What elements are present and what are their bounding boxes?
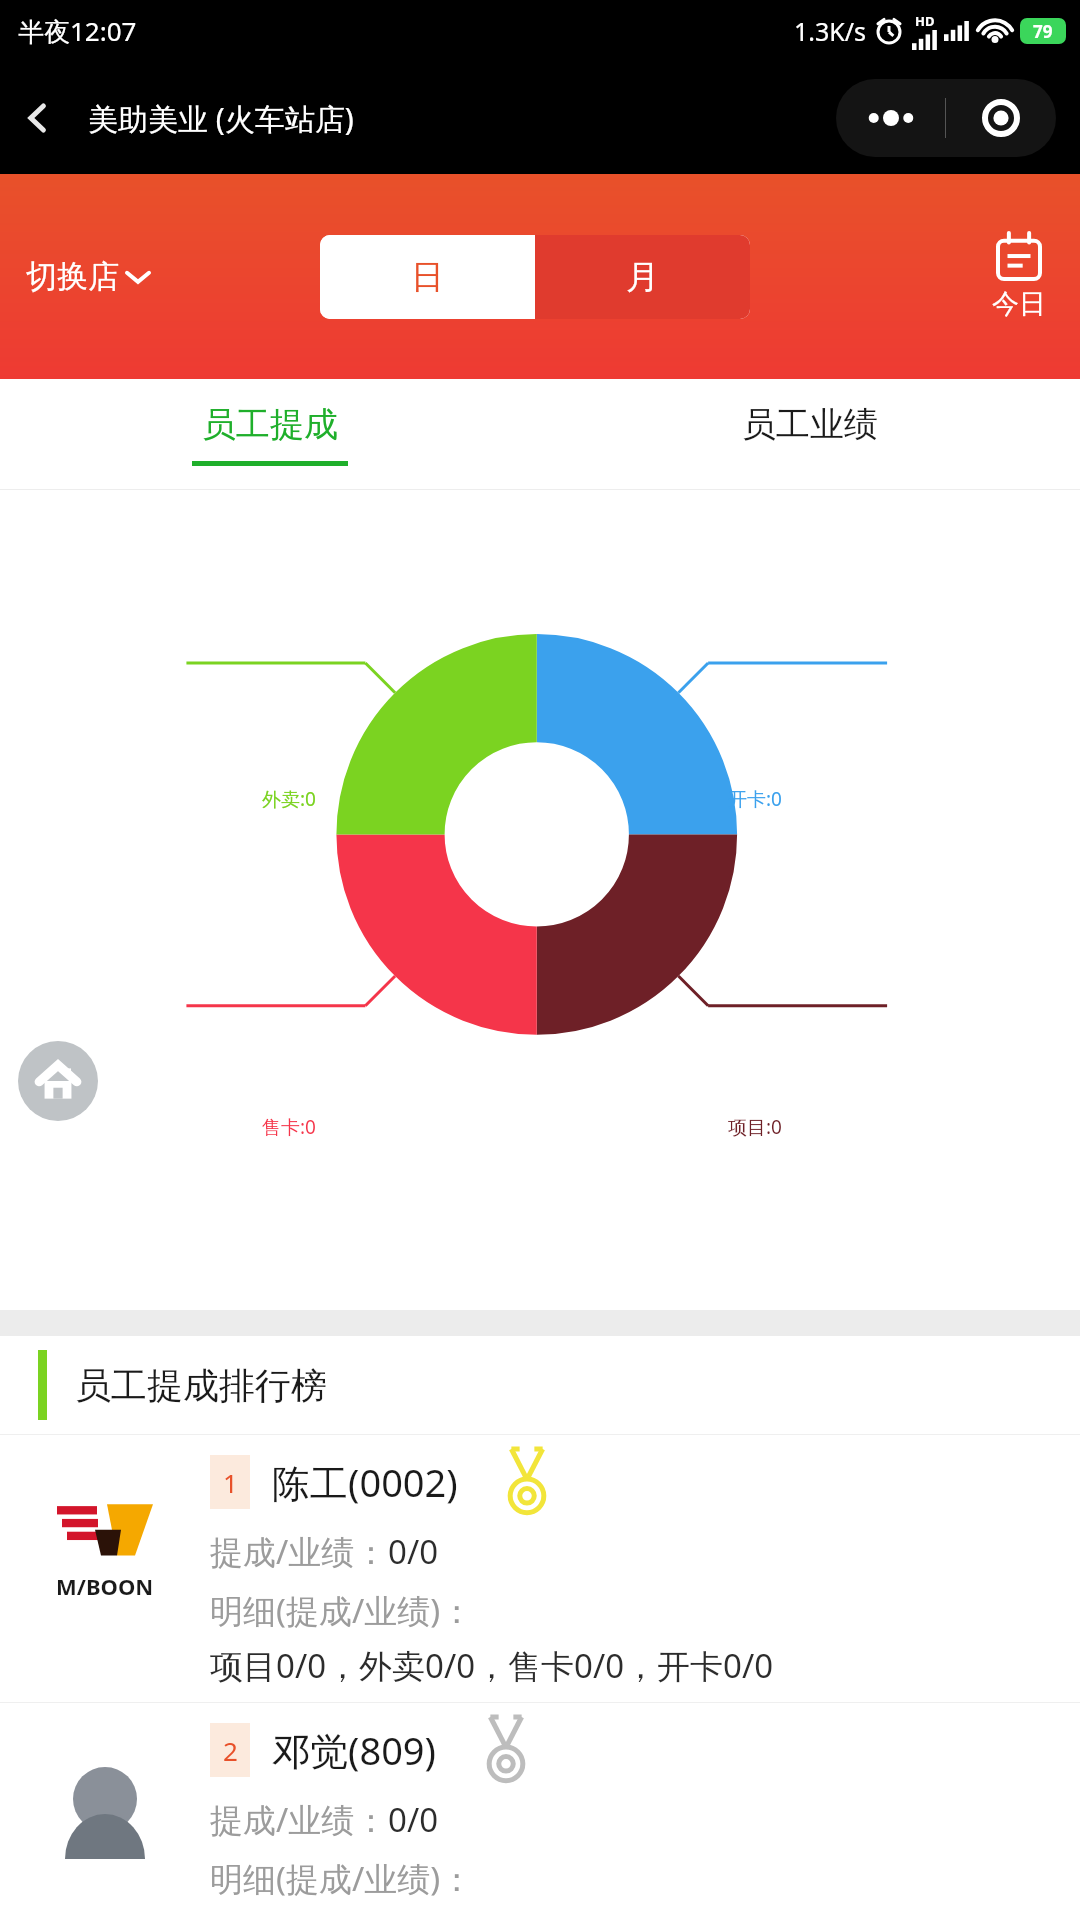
button[interactable]: Back (0, 80, 76, 156)
staticText: 今日 (992, 287, 1046, 321)
staticText: 美助美业 (火车站店) (88, 98, 354, 139)
staticText: 日 (411, 256, 444, 298)
staticText: 提成/业绩： (210, 1797, 388, 1842)
staticText: 2 (223, 1733, 238, 1768)
staticText: 开卡:0 (728, 786, 782, 812)
staticText: 员工业绩 (742, 403, 878, 446)
staticText: 79 (1033, 20, 1053, 43)
staticText: 0/0 (388, 1529, 439, 1574)
staticText: 售卡:0 (262, 1114, 316, 1140)
staticText: 员工提成排行榜 (75, 1363, 327, 1408)
staticText: 项目0/0，外卖0/0，售卡0/0，开卡0/0 (210, 1643, 774, 1688)
staticText: 员工提成 (202, 403, 338, 446)
button[interactable]: Close (946, 79, 1056, 157)
button[interactable]: 员工业绩 (540, 379, 1080, 489)
staticText: 项目:0 (728, 1114, 782, 1140)
button[interactable]: 今日 (988, 229, 1050, 325)
staticText: 陈工(0002) (272, 1456, 458, 1508)
staticText: M/BOON (56, 1571, 154, 1601)
staticText: HD (915, 12, 935, 30)
staticText: 半夜12:07 (18, 13, 137, 49)
staticText: 1.3K/s (794, 14, 867, 48)
staticText: 明细(提成/业绩)： (210, 1588, 474, 1633)
staticText: 切换店 (26, 257, 119, 296)
staticText: 1 (223, 1465, 238, 1500)
staticText: 明细(提成/业绩)： (210, 1856, 474, 1901)
staticText: 0/0 (388, 1797, 439, 1842)
staticText: 月 (626, 256, 659, 298)
staticText: 外卖:0 (262, 786, 316, 812)
button[interactable]: M/BOON (0, 1435, 1080, 1702)
button[interactable]: 月 (535, 235, 750, 319)
button[interactable]: More (836, 79, 945, 157)
staticText: 提成/业绩： (210, 1529, 388, 1574)
button[interactable]: Home (18, 1041, 98, 1121)
button[interactable]: 2 (0, 1703, 1080, 1920)
staticText: 邓觉(809) (272, 1724, 437, 1776)
button[interactable]: 员工提成 (0, 379, 540, 489)
button[interactable]: 日 (320, 235, 535, 319)
button[interactable]: 切换店 (20, 251, 155, 302)
